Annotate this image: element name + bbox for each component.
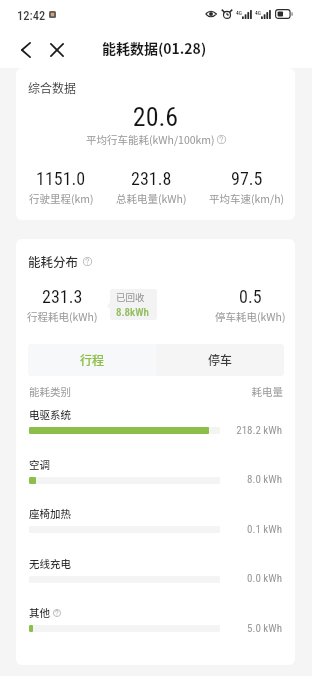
- staticText: 停车: [208, 351, 233, 368]
- staticText: 行程: [80, 351, 105, 368]
- staticText: 0.1 kWh: [16, 523, 282, 536]
- button[interactable]: Close: [42, 35, 71, 65]
- button[interactable]: 行程: [28, 344, 156, 376]
- staticText: 能耗类别: [29, 384, 71, 399]
- staticText: 已回收: [116, 290, 145, 304]
- staticText: 5.0 kWh: [16, 622, 282, 635]
- staticText: 停车耗电(kWh): [215, 309, 286, 324]
- staticText: 231.3: [42, 286, 83, 307]
- button[interactable]: 停车: [156, 344, 284, 376]
- staticText: 平均行车能耗(kWh/100km): [86, 132, 215, 147]
- staticText: 电驱系统: [29, 407, 71, 422]
- staticText: 97.5: [231, 168, 263, 189]
- staticText: 行程耗电(kWh): [27, 309, 98, 324]
- staticText: 0.5: [239, 286, 262, 307]
- staticText: 总耗电量(kWh): [116, 191, 187, 206]
- staticText: 其他: [29, 605, 50, 620]
- staticText: 座椅加热: [29, 506, 71, 521]
- staticText: 4G: [236, 10, 242, 16]
- staticText: 无线充电: [29, 556, 71, 571]
- staticText: 能耗分布: [28, 252, 79, 270]
- staticText: 8.8kWh: [116, 306, 149, 319]
- staticText: 行驶里程(km): [29, 191, 94, 206]
- staticText: 231.8: [131, 168, 172, 189]
- staticText: 218.2 kWh: [16, 424, 282, 437]
- staticText: 能耗数据(01.28): [102, 38, 207, 58]
- staticText: 8.0 kWh: [16, 473, 282, 486]
- button[interactable]: Back: [9, 35, 42, 65]
- staticText: 4G: [255, 10, 261, 16]
- staticText: 空调: [29, 457, 50, 472]
- staticText: 耗电量: [16, 384, 283, 399]
- staticText: 20.6: [16, 102, 295, 132]
- staticText: 0.0 kWh: [16, 572, 282, 585]
- staticText: 12:42: [17, 8, 46, 23]
- staticText: 平均车速(km/h): [209, 191, 285, 206]
- staticText: 1151.0: [36, 168, 86, 189]
- staticText: 综合数据: [28, 79, 77, 96]
